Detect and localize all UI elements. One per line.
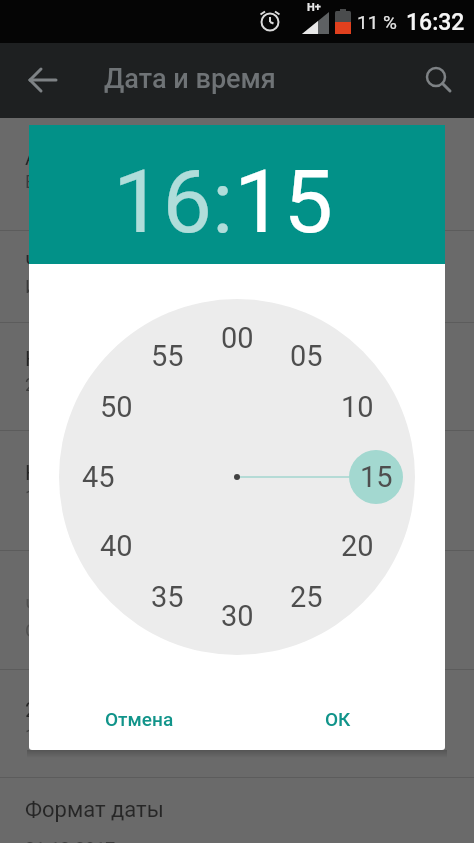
staticText: 20 [341,529,374,563]
staticText: 25 [290,580,323,614]
button[interactable]: 10 [329,387,385,427]
button[interactable]: 25 [278,577,334,617]
staticText: 35 [151,580,184,614]
staticText: Дата и время [104,63,276,95]
button[interactable]: 45 [70,457,126,497]
button[interactable]: 00 [209,318,265,358]
staticText: GMT+03:00, московское время [25,620,287,641]
staticText: 40 [100,529,133,563]
staticText: Автоматические дата и время [25,146,325,171]
staticText: 13:00 [25,725,70,746]
staticText: Настройка времени [25,461,223,486]
staticText: 16:32 [406,9,465,36]
staticText: Формат даты [25,797,164,823]
button[interactable]: 30 [209,596,265,636]
staticText: 16:15 [25,486,70,507]
button[interactable]: 50 [88,387,144,427]
staticText: Часовой пояс [25,595,162,620]
button[interactable]: 40 [88,526,144,566]
staticText: 16: [113,150,234,253]
staticText: H+ [307,1,321,14]
staticText: 31.12.2017 [25,838,116,843]
staticText: 45 [82,460,115,494]
staticText: 05 [290,339,323,373]
staticText: 10 [341,390,374,424]
button[interactable]: Отмена [89,697,189,741]
staticText: 15 [234,150,333,253]
staticText: 55 [151,339,184,373]
button[interactable]: 55 [139,336,195,376]
button[interactable] [349,450,403,504]
staticText: Настройка даты [25,347,187,372]
staticText: Часовой пояс сети [25,251,212,276]
staticText: 24-часовой формат [25,698,218,723]
staticText: 50 [100,390,133,424]
staticText: Использовать часовой пояс сети [25,276,308,297]
button[interactable]: 20 [329,526,385,566]
staticText: 11 % [357,11,397,33]
staticText: Отмена [105,708,174,730]
button[interactable]: 15 [348,457,404,497]
button[interactable]: ОК [304,697,372,741]
staticText: 26 февраля 2018 г. [25,374,185,395]
button[interactable] [423,64,453,94]
button[interactable] [28,65,58,95]
staticText: 00 [221,321,254,355]
button[interactable]: 05 [278,336,334,376]
staticText: 15 [360,460,393,494]
staticText: 30 [221,599,254,633]
staticText: ОК [325,708,351,730]
button[interactable]: 35 [139,577,195,617]
staticText: Время сети — да [25,171,166,192]
